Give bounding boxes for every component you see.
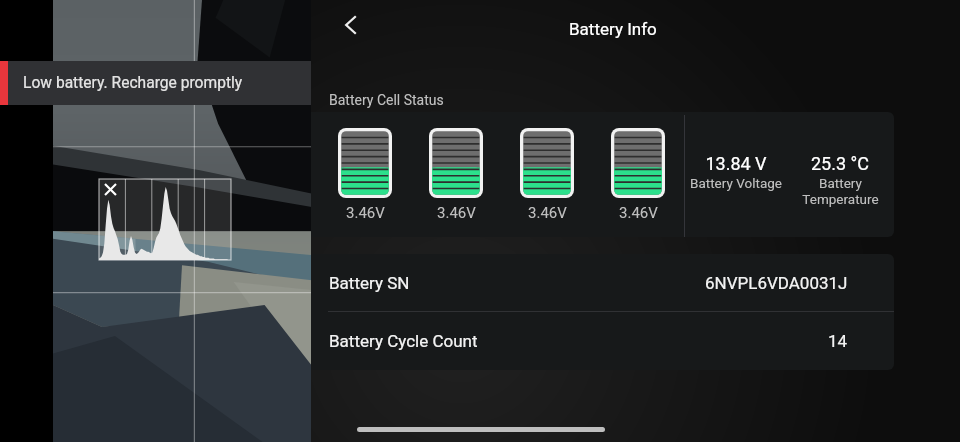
button[interactable]: Battery Cycle Count (311, 312, 894, 369)
staticText: 13.84 V (705, 153, 767, 174)
staticText: Battery Temperature (802, 175, 879, 207)
staticText: Battery Cycle Count (329, 331, 478, 351)
staticText: 3.46V (346, 204, 385, 222)
staticText: Battery SN (329, 273, 410, 293)
button[interactable]: Battery SN (311, 254, 894, 311)
staticText: Battery Info (569, 19, 657, 39)
button[interactable]: Back (331, 5, 371, 45)
staticText: Battery Voltage (690, 175, 782, 191)
staticText: 3.46V (619, 204, 658, 222)
staticText: Low battery. Recharge promptly (23, 74, 243, 92)
staticText: 3.46V (437, 204, 476, 222)
staticText: Battery Cell Status (329, 92, 444, 108)
staticText: 25.3 °C (811, 153, 869, 174)
staticText: 6NVPL6VDA0031J (705, 273, 848, 293)
staticText: 14 (828, 331, 848, 351)
staticText: 3.46V (528, 204, 567, 222)
